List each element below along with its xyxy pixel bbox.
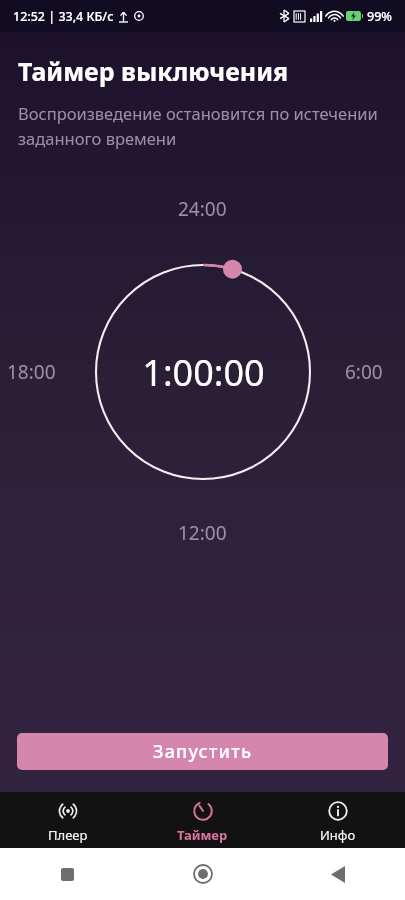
staticText: 6:00 — [345, 359, 383, 385]
staticText: 12:52 | 33,4 КБ/с — [13, 8, 114, 25]
button[interactable]: Инфо — [270, 792, 405, 848]
staticText: 99% — [367, 8, 392, 25]
button[interactable]: Back — [270, 848, 405, 900]
button[interactable]: Timer dial — [87, 256, 319, 488]
button[interactable]: Таймер — [135, 792, 270, 848]
staticText: 24:00 — [178, 196, 227, 222]
staticText: Воспроизведение остановится по истечении… — [18, 102, 379, 149]
button[interactable]: Запустить — [17, 733, 388, 770]
staticText: Таймер — [177, 826, 228, 844]
staticText: Запустить — [153, 739, 253, 764]
staticText: Инфо — [320, 826, 356, 844]
staticText: Плеер — [48, 826, 88, 844]
staticText: Таймер выключения — [18, 54, 289, 88]
staticText: 18:00 — [7, 359, 56, 385]
button[interactable]: Home — [135, 848, 270, 900]
staticText: 1:00:00 — [142, 348, 265, 397]
staticText: 12:00 — [178, 520, 227, 546]
button[interactable]: Плеер — [0, 792, 135, 848]
button[interactable]: Recents — [0, 848, 135, 900]
